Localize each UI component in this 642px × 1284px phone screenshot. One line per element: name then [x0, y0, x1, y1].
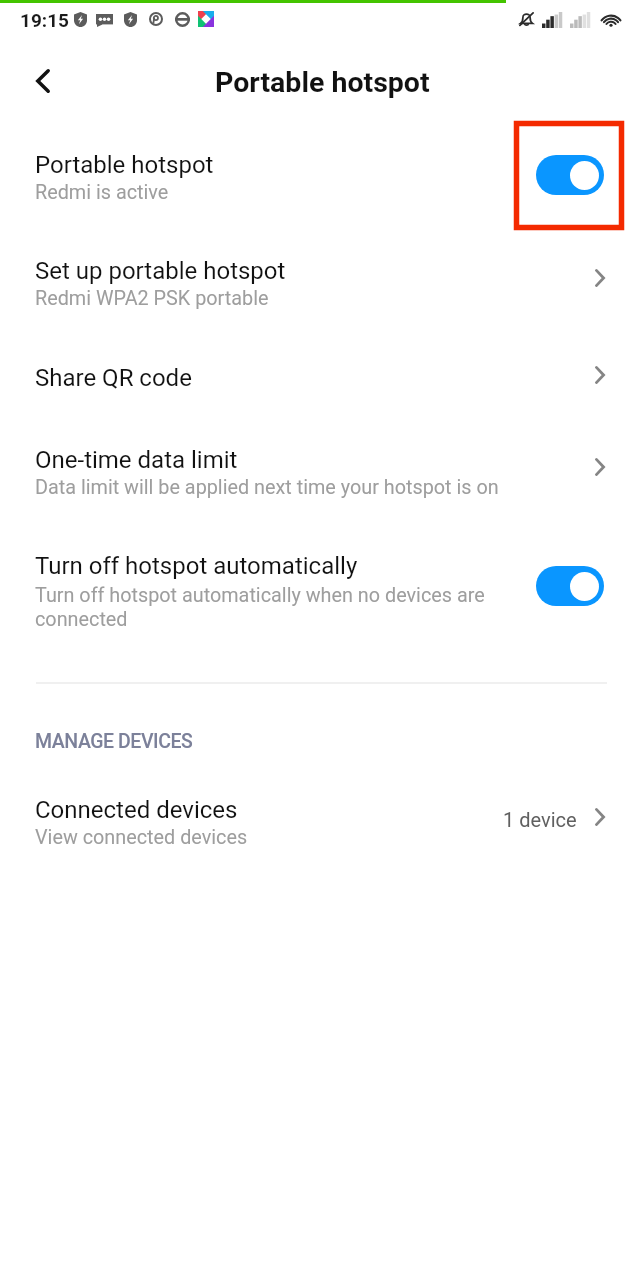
staticText: Set up portable hotspot — [35, 257, 286, 285]
button[interactable]: Turn off hotspot automatically — [536, 566, 604, 606]
staticText: Portable hotspot — [35, 151, 214, 179]
staticText: 1 device — [503, 808, 577, 831]
staticText: Redmi WPA2 PSK portable — [35, 287, 269, 310]
staticText: View connected devices — [35, 826, 248, 849]
staticText: Portable hotspot — [215, 66, 430, 99]
staticText: Redmi is active — [35, 181, 169, 204]
button[interactable]: Portable hotspot — [536, 155, 604, 195]
staticText: One-time data limit — [35, 446, 238, 474]
staticText: 19:15 — [20, 9, 69, 31]
staticText: MANAGE DEVICES — [35, 730, 193, 753]
button[interactable]: Turn off hotspot automatically — [0, 531, 642, 646]
button[interactable]: One-time data limit — [0, 425, 642, 520]
button[interactable]: Connected devices — [0, 775, 642, 870]
button[interactable]: Share QR code — [0, 343, 642, 413]
staticText: Turn off hotspot automatically when no d… — [35, 584, 490, 630]
staticText: Connected devices — [35, 796, 238, 824]
staticText: Turn off hotspot automatically — [35, 552, 358, 580]
button[interactable]: Portable hotspot — [0, 130, 642, 230]
button[interactable]: Back — [21, 59, 65, 103]
staticText: Data limit will be applied next time you… — [35, 476, 499, 499]
staticText: Share QR code — [35, 364, 192, 392]
button[interactable]: Set up portable hotspot — [0, 236, 642, 336]
